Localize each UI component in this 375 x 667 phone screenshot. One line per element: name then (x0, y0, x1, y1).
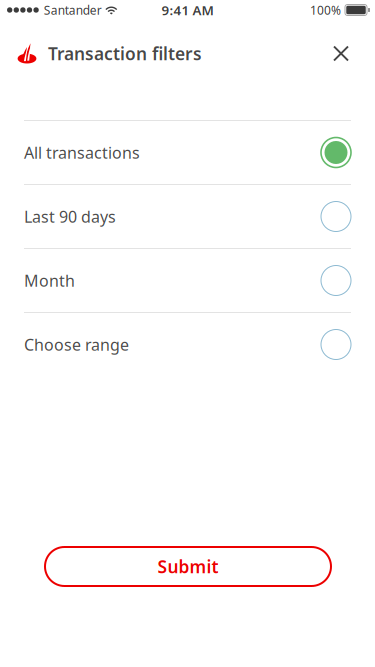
staticText: Choose range (24, 334, 129, 355)
button[interactable]: Month (0, 249, 375, 312)
button[interactable]: Close (317, 29, 365, 77)
staticText: 100% (310, 2, 341, 18)
button[interactable]: Choose range (0, 313, 375, 376)
staticText: Submit (157, 555, 218, 578)
staticText: Transaction filters (48, 42, 202, 65)
staticText: Last 90 days (24, 206, 116, 227)
staticText: All transactions (24, 142, 140, 163)
button[interactable]: Last 90 days (0, 185, 375, 248)
staticText: Santander (44, 2, 102, 18)
button[interactable]: Submit (45, 547, 331, 586)
staticText: 9:41 AM (161, 1, 213, 19)
staticText: Month (24, 270, 75, 291)
button[interactable]: All transactions (0, 121, 375, 184)
